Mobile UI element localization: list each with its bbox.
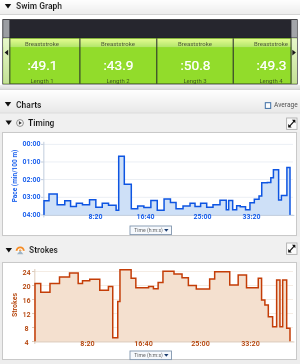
staticText: 04:00 (22, 211, 41, 219)
staticText: :49.1 (27, 57, 58, 73)
button[interactable]: Previous lengths (3, 38, 9, 83)
staticText: Strokes (10, 292, 18, 317)
staticText: Breaststroke (101, 40, 135, 47)
button[interactable]: Time (h:m:s) (130, 226, 172, 235)
staticText: :50.8 (180, 57, 211, 73)
staticText: Length 2 (106, 77, 130, 84)
staticText: 16 (22, 296, 31, 304)
staticText: Breaststroke (178, 40, 212, 47)
button[interactable]: Timing (0, 114, 240, 132)
staticText: :49.3 (256, 57, 287, 73)
button[interactable]: Charts (0, 90, 240, 113)
button[interactable]: Strokes (0, 240, 240, 260)
button[interactable]: Time (h:m:s) (130, 351, 172, 360)
staticText: Time (h:m:s) (134, 352, 163, 358)
staticText: Breaststroke (254, 40, 288, 47)
staticText: 03:00 (22, 193, 41, 201)
staticText: 16:40 (134, 339, 153, 347)
button[interactable] (157, 38, 234, 83)
staticText: Breaststroke (25, 40, 59, 47)
button[interactable] (80, 38, 157, 83)
staticText: Charts (16, 100, 42, 110)
staticText: 8:20 (80, 339, 95, 347)
button[interactable] (4, 38, 81, 83)
staticText: Strokes (29, 245, 58, 255)
staticText: 16:40 (136, 213, 155, 221)
button[interactable]: Average (263, 100, 299, 111)
staticText: 4 (24, 338, 29, 346)
staticText: 02:00 (22, 176, 41, 184)
staticText: Time (h:m:s) (134, 227, 163, 233)
staticText: 12 (22, 310, 31, 318)
staticText: Swim Graph (16, 1, 63, 11)
staticText: 24 (22, 268, 31, 276)
staticText: Average (274, 101, 298, 109)
button[interactable]: Swim Graph (0, 0, 300, 14)
staticText: Timing (28, 118, 55, 128)
button[interactable] (233, 38, 300, 83)
staticText: Length 4 (259, 77, 283, 84)
staticText: 8:20 (88, 213, 103, 221)
button[interactable]: Next lengths (291, 38, 297, 83)
staticText: Length 1 (30, 77, 54, 84)
staticText: 33:20 (241, 339, 260, 347)
staticText: Length 3 (183, 77, 207, 84)
staticText: 20 (22, 282, 31, 290)
staticText: 8 (24, 324, 29, 332)
staticText: Pace (min/100 m) (10, 149, 18, 202)
button[interactable]: Expand timing chart (287, 118, 297, 129)
staticText: 33:20 (242, 213, 261, 221)
staticText: 25:00 (191, 339, 210, 347)
staticText: :43.9 (103, 57, 134, 73)
staticText: 01:00 (22, 158, 41, 166)
staticText: 25:00 (193, 213, 212, 221)
staticText: 00:00 (22, 140, 41, 148)
button[interactable]: Expand strokes chart (287, 243, 297, 254)
